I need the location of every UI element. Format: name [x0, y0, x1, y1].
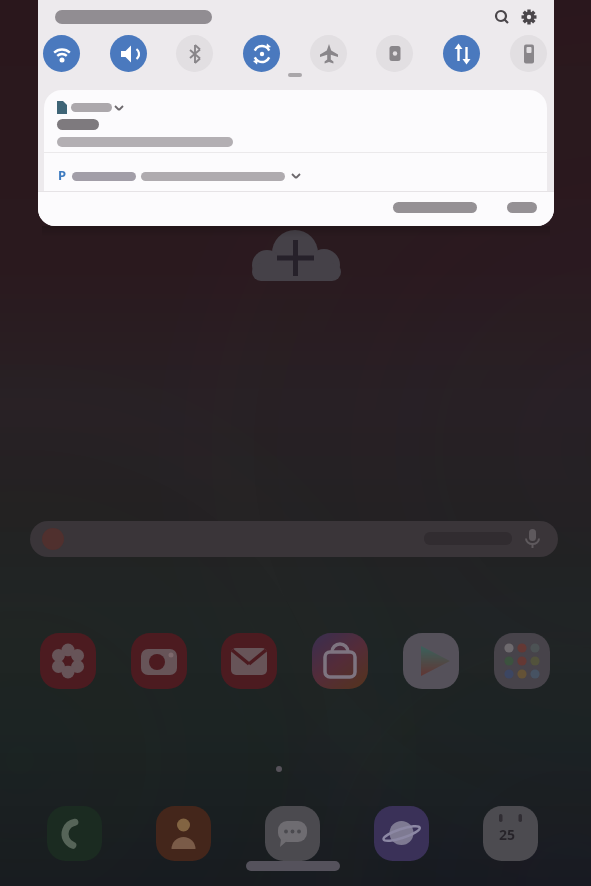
- button[interactable]: [374, 806, 429, 861]
- button[interactable]: [376, 35, 413, 72]
- button[interactable]: [40, 633, 96, 689]
- button[interactable]: [494, 633, 550, 689]
- button[interactable]: [156, 806, 211, 861]
- button[interactable]: [38, 191, 554, 226]
- button[interactable]: [243, 35, 280, 72]
- button[interactable]: [47, 806, 102, 861]
- button[interactable]: [221, 633, 277, 689]
- button[interactable]: [483, 806, 538, 861]
- button[interactable]: [176, 35, 213, 72]
- button[interactable]: [131, 633, 187, 689]
- button[interactable]: [510, 35, 547, 72]
- button[interactable]: [30, 521, 558, 557]
- button[interactable]: [310, 35, 347, 72]
- button[interactable]: [44, 90, 547, 152]
- button[interactable]: [240, 225, 350, 287]
- button[interactable]: [376, 196, 494, 220]
- button[interactable]: [110, 35, 147, 72]
- staticText: 25: [499, 825, 516, 844]
- button[interactable]: [496, 196, 548, 220]
- staticText: P: [58, 166, 67, 184]
- button[interactable]: [43, 35, 80, 72]
- button[interactable]: [265, 806, 320, 861]
- button[interactable]: [312, 633, 368, 689]
- button[interactable]: [443, 35, 480, 72]
- button[interactable]: [403, 633, 459, 689]
- button[interactable]: P: [44, 153, 547, 191]
